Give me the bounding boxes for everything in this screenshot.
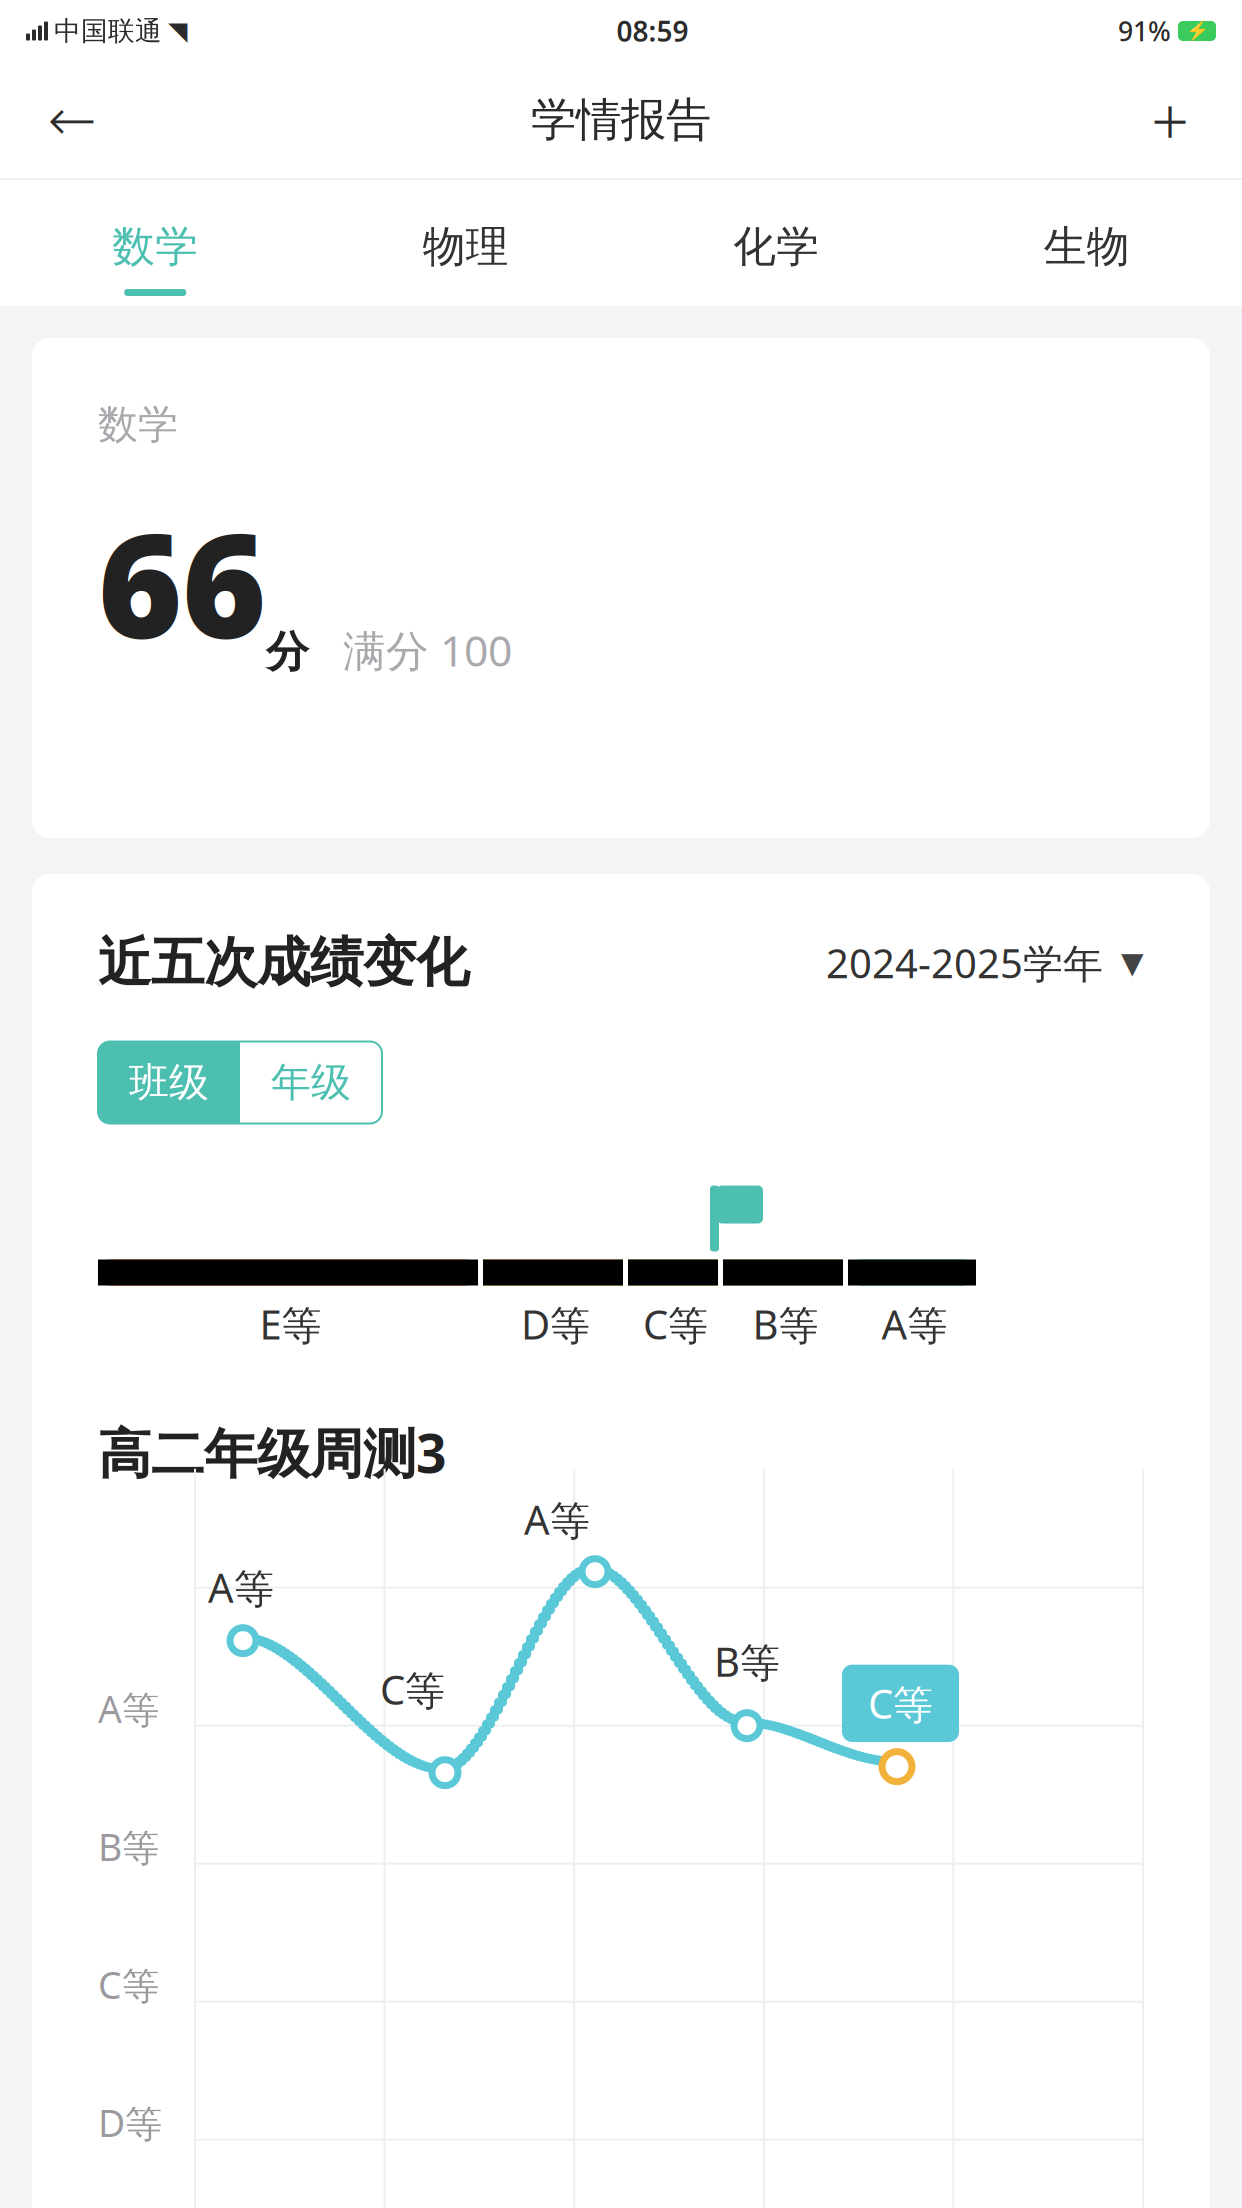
staticText: C等 bbox=[868, 1677, 933, 1730]
staticText: A等 bbox=[208, 1561, 274, 1614]
staticText: ⚡ bbox=[1185, 20, 1208, 42]
staticText: 66 bbox=[98, 487, 266, 678]
staticText: C等 bbox=[98, 1960, 159, 2010]
staticText: 2024-2025学年 bbox=[826, 936, 1103, 989]
staticText: A等 bbox=[881, 1297, 947, 1351]
staticText: D等 bbox=[521, 1297, 590, 1351]
staticText: B等 bbox=[98, 1822, 159, 1872]
staticText: 化学 bbox=[733, 221, 819, 273]
staticText: C等 bbox=[643, 1297, 708, 1351]
staticText: D等 bbox=[98, 2098, 162, 2148]
button[interactable]: 添加 bbox=[1124, 74, 1216, 166]
staticText: B等 bbox=[714, 1635, 780, 1688]
staticText: 数学 bbox=[98, 400, 178, 449]
staticText: + bbox=[1151, 76, 1189, 164]
staticText: 08:59 bbox=[616, 12, 688, 50]
staticText: E等 bbox=[259, 1297, 321, 1351]
button[interactable]: 化学 bbox=[621, 180, 931, 306]
staticText: 近五次成绩变化 bbox=[98, 930, 469, 995]
staticText: ← bbox=[47, 87, 96, 153]
staticText: ▼ bbox=[1121, 946, 1144, 979]
button[interactable]: 2024-2025学年 bbox=[826, 936, 1144, 989]
staticText: 生物 bbox=[1044, 221, 1130, 273]
staticText: 数学 bbox=[112, 221, 198, 273]
staticText: 物理 bbox=[423, 221, 509, 273]
staticText: A等 bbox=[98, 1684, 159, 1734]
button[interactable]: 物理 bbox=[310, 180, 621, 306]
staticText: 中国联通 bbox=[54, 15, 162, 47]
staticText: 91% bbox=[1118, 13, 1171, 49]
staticText: 班级 bbox=[129, 1058, 209, 1107]
staticText: ◥ bbox=[168, 17, 187, 45]
button[interactable]: 返回 bbox=[26, 74, 118, 166]
staticText: 满分 100 bbox=[343, 622, 512, 678]
staticText: 年级 bbox=[271, 1058, 351, 1107]
staticText: 学情报告 bbox=[531, 92, 711, 148]
button[interactable]: 数学 bbox=[0, 180, 310, 306]
button[interactable]: 班级 bbox=[98, 1041, 240, 1123]
staticText: 高二年级周测3 bbox=[98, 1417, 447, 1488]
button[interactable]: 年级 bbox=[240, 1041, 382, 1123]
staticText: C等 bbox=[380, 1663, 445, 1716]
staticText: 分 bbox=[266, 626, 309, 678]
staticText: A等 bbox=[524, 1493, 590, 1546]
staticText: B等 bbox=[752, 1297, 818, 1351]
button[interactable]: 生物 bbox=[931, 180, 1242, 306]
